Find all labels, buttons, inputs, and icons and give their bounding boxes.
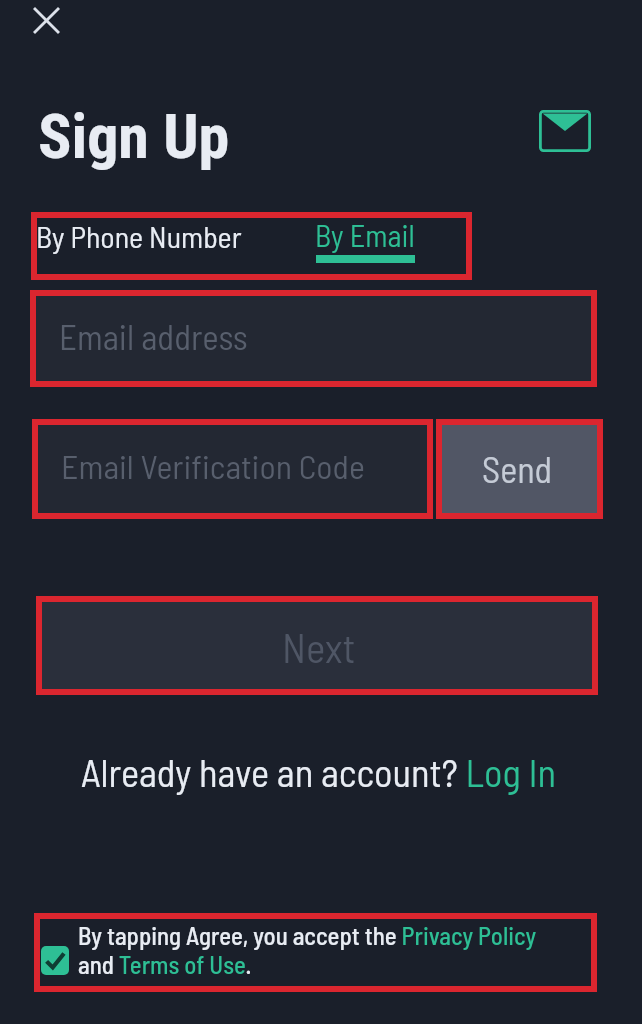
button[interactable]	[34, 212, 246, 256]
staticText: Next	[282, 622, 356, 671]
button[interactable]	[32, 419, 433, 519]
staticText: By Email	[315, 217, 415, 253]
button[interactable]: Close	[20, 0, 73, 47]
staticText: Send	[482, 447, 553, 491]
staticText: Email Verification Code	[61, 445, 365, 486]
button[interactable]	[36, 596, 598, 695]
button[interactable]	[34, 913, 597, 992]
button[interactable]	[30, 290, 597, 387]
staticText: Sign Up	[38, 100, 230, 173]
staticText: By tapping Agree, you accept the Privacy…	[78, 920, 537, 979]
staticText: Email address	[59, 315, 248, 357]
staticText: By Phone Number	[36, 218, 242, 254]
button[interactable]: Email sign up	[524, 95, 606, 167]
button[interactable]	[436, 419, 603, 519]
button[interactable]	[312, 212, 418, 266]
staticText: Already have an account? Log In	[81, 748, 557, 794]
button[interactable]	[80, 750, 558, 794]
